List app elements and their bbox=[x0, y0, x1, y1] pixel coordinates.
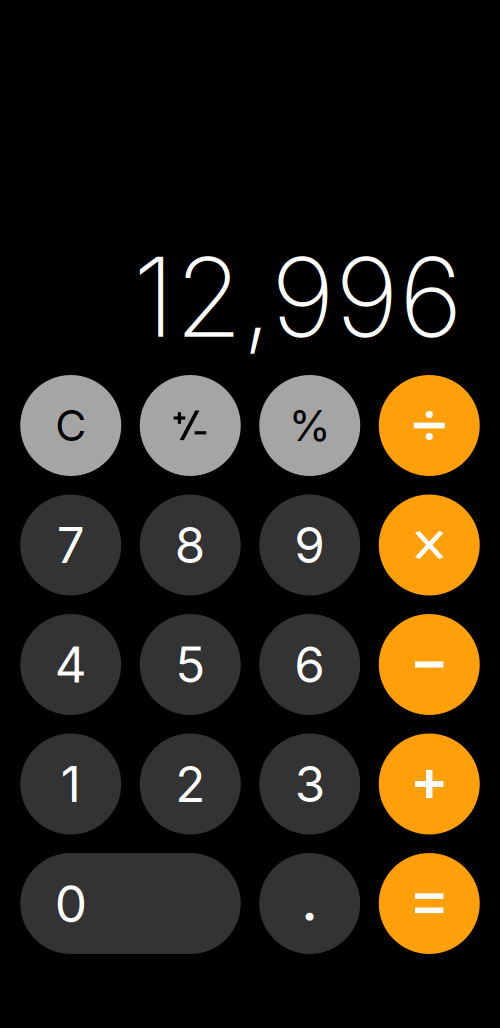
staticText: C bbox=[55, 400, 86, 451]
staticText: 9 bbox=[294, 515, 325, 575]
button[interactable]: Subtract bbox=[379, 614, 480, 715]
button[interactable]: 2 bbox=[140, 733, 241, 834]
button[interactable]: C bbox=[20, 375, 121, 476]
button[interactable]: 4 bbox=[20, 614, 121, 715]
staticText: 4 bbox=[55, 635, 87, 694]
button[interactable]: 0 bbox=[20, 853, 241, 954]
button[interactable]: . bbox=[259, 853, 360, 954]
staticText: 8 bbox=[175, 515, 206, 575]
staticText: 12,996 bbox=[133, 231, 463, 363]
button[interactable]: 7 bbox=[20, 494, 121, 595]
staticText: 6 bbox=[294, 635, 325, 694]
staticText: . bbox=[301, 861, 319, 936]
button[interactable]: Divide bbox=[379, 375, 480, 476]
button[interactable]: 8 bbox=[140, 494, 241, 595]
button[interactable]: 3 bbox=[259, 733, 360, 834]
staticText: 3 bbox=[295, 754, 325, 814]
button[interactable]: 5 bbox=[140, 614, 241, 715]
staticText: 0 bbox=[55, 872, 87, 934]
button[interactable]: 9 bbox=[259, 494, 360, 595]
button[interactable]: 6 bbox=[259, 614, 360, 715]
staticText: 7 bbox=[57, 515, 85, 575]
staticText: 1 bbox=[61, 754, 81, 814]
button[interactable]: Toggle sign bbox=[140, 375, 241, 476]
button[interactable]: Equals bbox=[379, 853, 480, 954]
button[interactable]: % bbox=[259, 375, 360, 476]
button[interactable]: 1 bbox=[20, 733, 121, 834]
button[interactable]: Add bbox=[379, 733, 480, 834]
staticText: 2 bbox=[175, 754, 205, 814]
button[interactable]: Multiply bbox=[379, 494, 480, 595]
staticText: 5 bbox=[175, 635, 205, 694]
staticText: % bbox=[289, 400, 331, 451]
